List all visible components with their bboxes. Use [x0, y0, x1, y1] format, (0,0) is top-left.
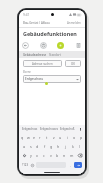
button[interactable]: Erdgeschoss — [21, 125, 39, 133]
button[interactable]: Liste — [75, 42, 82, 49]
button[interactable]: Zurück — [22, 42, 29, 49]
staticText: o — [73, 135, 76, 140]
staticText: Standort — [49, 53, 61, 57]
button[interactable]: n — [61, 151, 68, 160]
staticText: d — [36, 144, 39, 149]
button[interactable]: a — [21, 142, 27, 151]
staticText: j — [65, 144, 66, 149]
staticText: n — [63, 153, 66, 158]
button[interactable]: p — [78, 133, 85, 142]
button[interactable]: q — [19, 133, 25, 142]
staticText: . — [70, 163, 71, 168]
button[interactable]: c — [40, 151, 47, 160]
button[interactable]: j — [62, 142, 69, 151]
button[interactable]: v — [47, 151, 54, 160]
button[interactable]: l — [76, 142, 83, 151]
button[interactable]: u — [57, 133, 64, 142]
staticText: u — [59, 135, 62, 140]
staticText: f — [44, 144, 46, 149]
staticText: p — [80, 135, 83, 140]
staticText: w — [27, 135, 30, 140]
button[interactable]: r — [37, 133, 43, 142]
button[interactable]: Eingabe — [74, 162, 82, 168]
button[interactable]: s — [27, 142, 34, 151]
button[interactable]: f — [41, 142, 48, 151]
staticText: b — [56, 153, 59, 158]
button[interactable]: Löschen — [75, 151, 84, 160]
button[interactable]: Spracheingabe — [77, 125, 83, 133]
button[interactable]: Adresse suchen — [23, 60, 62, 67]
staticText: Anmelden — [67, 21, 81, 25]
staticText: Erdgeschoss — [25, 77, 43, 81]
staticText: Adresse suchen — [32, 62, 53, 66]
button[interactable]: k — [69, 142, 76, 151]
button[interactable]: Erdgeschoß — [58, 125, 77, 133]
staticText: Erdgeschosses — [40, 127, 58, 131]
button[interactable]: z — [50, 133, 57, 142]
staticText: Erdgeschoß — [60, 127, 75, 131]
button[interactable]: y — [28, 151, 34, 160]
button[interactable]: i — [64, 133, 71, 142]
staticText: l — [79, 144, 80, 149]
staticText: Erdgeschoss — [22, 127, 38, 131]
button[interactable]: Aktualisieren — [40, 42, 47, 49]
button[interactable]: x — [34, 151, 40, 160]
button[interactable]: Erdgeschoss — [23, 75, 81, 83]
button[interactable]: OK — [65, 60, 81, 67]
staticText: m — [70, 153, 74, 158]
button[interactable]: w — [25, 133, 31, 142]
staticText: x — [36, 153, 38, 158]
button[interactable]: h — [55, 142, 62, 151]
staticText: y — [30, 153, 32, 158]
button[interactable]: Erdgeschosses — [39, 125, 58, 133]
button[interactable]: o — [71, 133, 78, 142]
staticText: h — [57, 144, 60, 149]
staticText: t — [46, 135, 48, 140]
staticText: q — [21, 135, 24, 140]
button[interactable]: t — [43, 133, 50, 142]
button[interactable]: m — [68, 151, 75, 160]
staticText: r — [39, 135, 41, 140]
button[interactable]: g — [48, 142, 55, 151]
button[interactable]: Emoji — [29, 160, 35, 170]
staticText: Bau-Gerüst / Altbau — [23, 21, 50, 25]
staticText: Gebäudeadresse — [23, 53, 47, 57]
staticText: e — [33, 135, 36, 140]
staticText: k — [72, 144, 74, 149]
staticText: 9:41 — [23, 13, 30, 17]
button[interactable]: Aktive Funktion — [57, 42, 64, 49]
button[interactable]: Umschalt — [20, 151, 28, 160]
staticText: Ebene — [23, 70, 31, 74]
button[interactable]: b — [54, 151, 61, 160]
staticText: Gebäudefunktionen — [23, 30, 77, 37]
staticText: s — [30, 144, 32, 149]
staticText: OK — [71, 62, 75, 66]
staticText: c — [43, 153, 45, 158]
staticText: i — [67, 135, 68, 140]
staticText: a — [23, 144, 26, 149]
staticText: v — [50, 153, 52, 158]
button[interactable]: d — [34, 142, 41, 151]
button[interactable]: ?123 — [21, 160, 29, 170]
button[interactable]: e — [31, 133, 37, 142]
staticText: ?123 — [22, 163, 29, 167]
staticText: g — [50, 144, 53, 149]
staticText: z — [53, 135, 55, 140]
